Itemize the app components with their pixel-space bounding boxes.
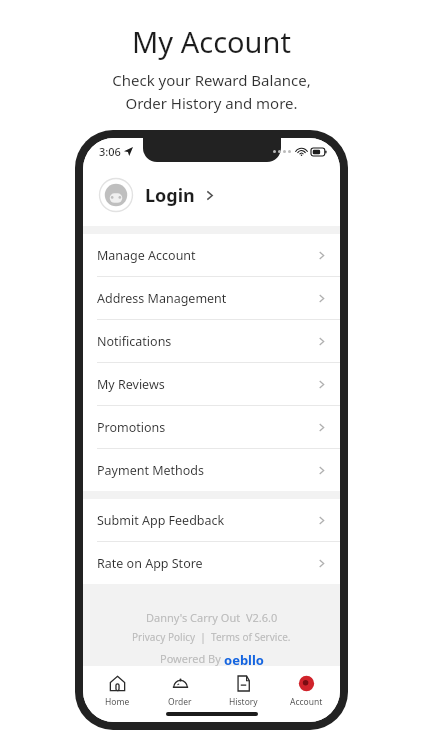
staticText: Check your Reward Balance, [112, 70, 311, 90]
button[interactable]: Rate on App Store [83, 542, 340, 584]
staticText: My Account [132, 22, 291, 61]
button[interactable]: My Reviews [83, 363, 340, 405]
staticText: Order History and more. [125, 93, 298, 113]
staticText: Rate on App Store [97, 555, 317, 572]
staticText: Payment Methods [97, 462, 317, 479]
button[interactable]: Promotions [83, 406, 340, 448]
button[interactable]: Address Management [83, 277, 340, 319]
staticText: Account [290, 696, 323, 708]
button[interactable]: Manage Account [83, 234, 340, 276]
button[interactable]: Submit App Feedback [83, 499, 340, 541]
button[interactable]: Notifications [83, 320, 340, 362]
button[interactable]: Login [83, 164, 340, 226]
staticText: My Reviews [97, 376, 317, 393]
staticText: oebllo [224, 651, 264, 666]
button[interactable]: Home [88, 673, 146, 710]
staticText: Submit App Feedback [97, 512, 317, 529]
button[interactable]: History [214, 673, 272, 710]
staticText: Notifications [97, 333, 317, 350]
staticText: Promotions [97, 419, 317, 436]
button[interactable]: Order [151, 673, 209, 710]
staticText: Order [168, 696, 192, 708]
button[interactable]: Account [277, 673, 335, 710]
staticText: Danny's Carry Out V2.6.0 [146, 610, 278, 625]
staticText: 3:06 [99, 144, 121, 159]
staticText: Manage Account [97, 247, 317, 264]
staticText: Privacy Policy | Terms of Service. [132, 630, 291, 644]
staticText: Address Management [97, 290, 317, 307]
button[interactable]: Payment Methods [83, 449, 340, 491]
staticText: Powered By [160, 651, 224, 666]
staticText: History [229, 696, 258, 708]
staticText: Login [145, 183, 195, 208]
staticText: Home [105, 696, 130, 708]
